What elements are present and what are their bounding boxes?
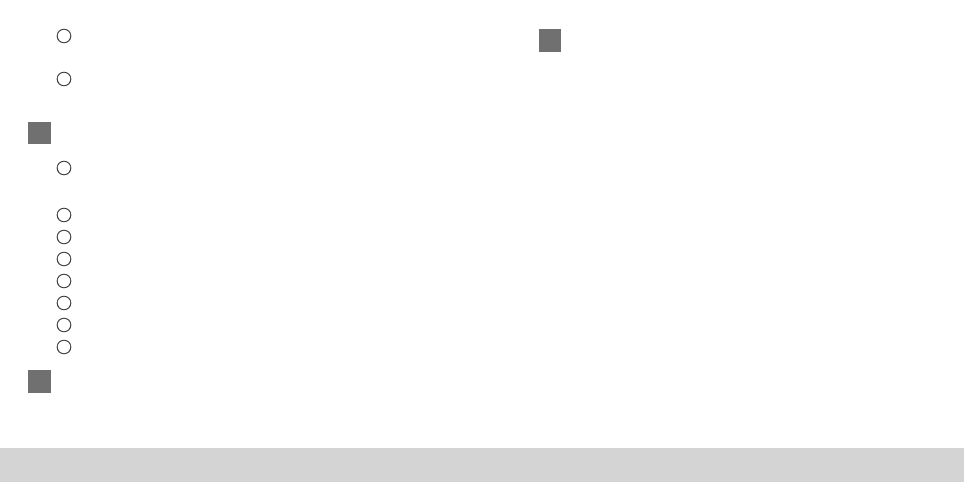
button[interactable]: Option 4 (0, 273, 964, 295)
button[interactable]: Notifications (0, 71, 964, 87)
button[interactable]: Option 1 (0, 207, 964, 229)
button[interactable]: Option 7 (0, 339, 964, 361)
button[interactable]: Option 2 (0, 229, 964, 251)
button[interactable]: Theme (0, 160, 964, 176)
button[interactable]: Option 5 (0, 295, 964, 317)
button[interactable]: Option 6 (0, 317, 964, 339)
button[interactable]: Account (0, 28, 964, 44)
button[interactable]: Option 3 (0, 251, 964, 273)
